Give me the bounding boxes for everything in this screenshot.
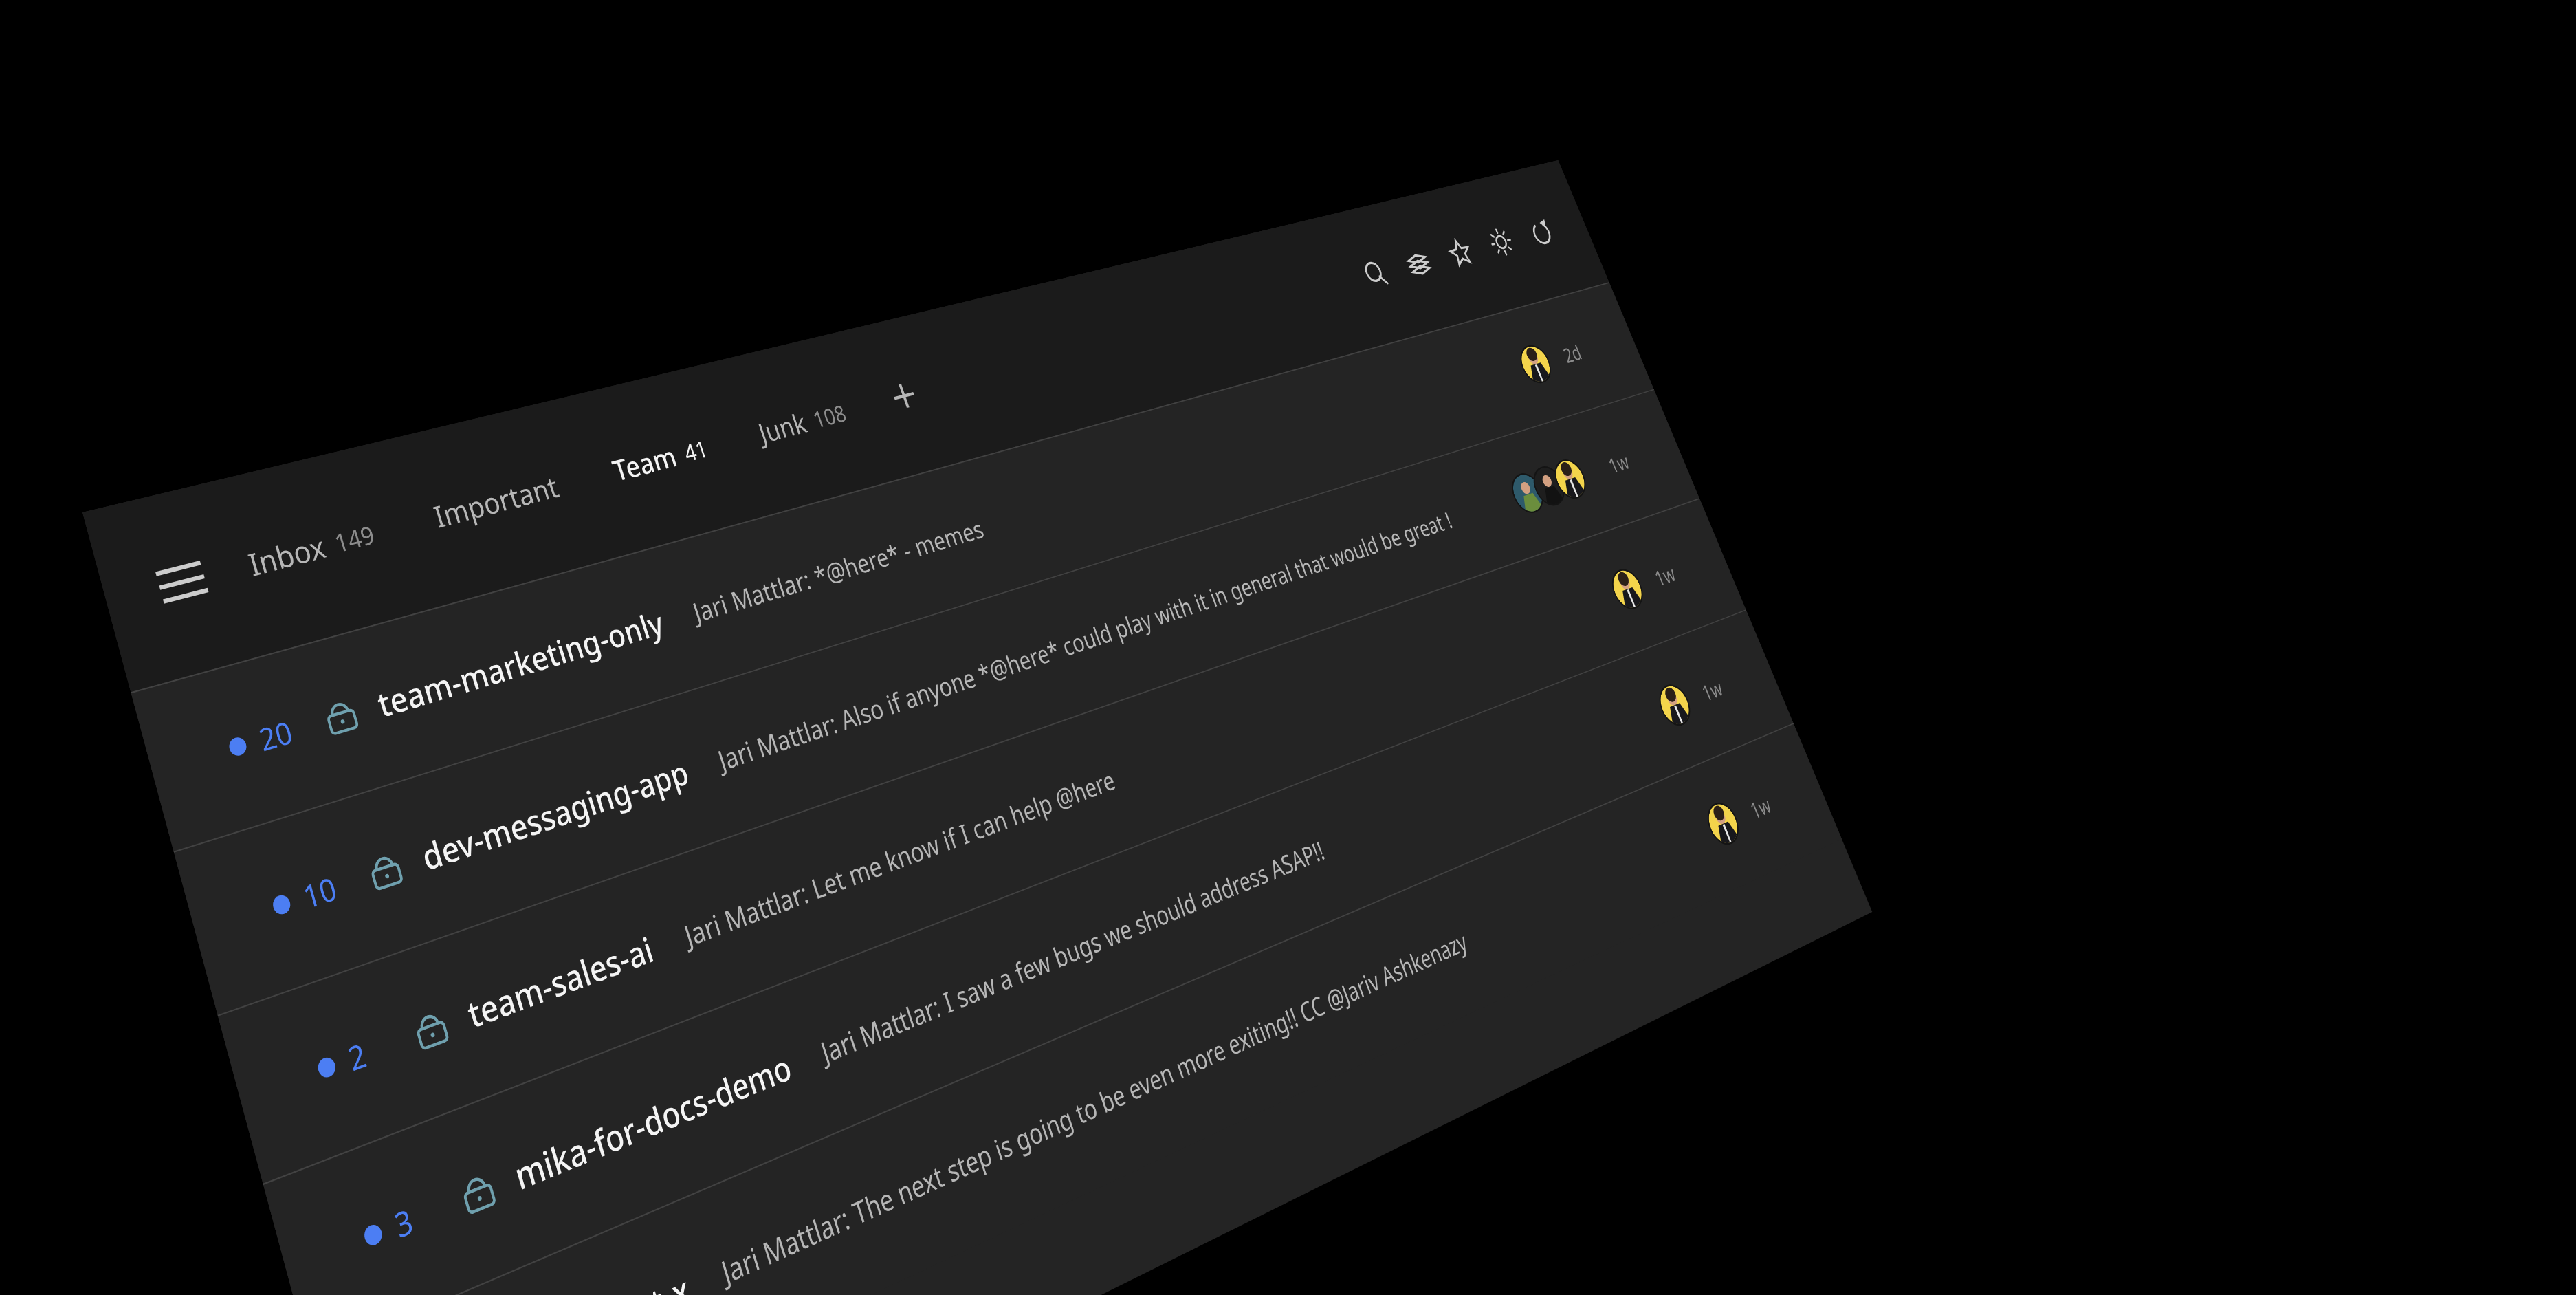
staticText: Jari Mattlar: Also if anyone *@here* cou… <box>713 488 1506 778</box>
button[interactable]: Refresh <box>1510 199 1572 265</box>
staticText: Jari Mattlar: I saw a few bugs we should… <box>816 702 1654 1071</box>
button[interactable]: Inbox <box>234 500 389 599</box>
staticText: 108 <box>809 397 850 435</box>
button[interactable]: Important <box>420 454 572 550</box>
button[interactable]: 20 <box>131 282 1654 851</box>
button[interactable]: Junk <box>745 383 859 463</box>
button[interactable]: Search <box>1343 240 1409 309</box>
button[interactable]: Favorites <box>1428 219 1492 287</box>
staticText: 3 <box>389 1197 418 1248</box>
staticText: 1w <box>1746 789 1775 825</box>
staticText: mika-for-docs-demo <box>509 1043 797 1201</box>
staticText: Junk <box>753 404 811 452</box>
staticText: Inbox <box>244 526 330 586</box>
staticText: 41 <box>680 432 712 468</box>
staticText: Jari Mattlar: *@here* - memes <box>688 359 1514 630</box>
staticText: 10 <box>298 866 342 918</box>
staticText: 1w <box>1604 447 1633 479</box>
button[interactable]: New conversation <box>875 366 933 426</box>
staticText: 2d <box>1559 338 1585 368</box>
staticText: 149 <box>330 517 379 560</box>
button[interactable]: Theme <box>1469 209 1533 276</box>
button[interactable]: 6 <box>310 723 1842 1295</box>
staticText: team-sales-ai <box>462 925 659 1039</box>
staticText: Important <box>429 467 563 537</box>
button[interactable]: Team <box>599 417 721 502</box>
staticText: 2 <box>343 1032 371 1081</box>
button[interactable]: Archive <box>1386 229 1451 298</box>
staticText: dev-messaging-app <box>416 749 694 881</box>
staticText: team-marketing-only <box>372 601 669 727</box>
button[interactable]: Menu <box>130 530 234 635</box>
staticText: 1w <box>1650 559 1679 592</box>
button[interactable]: 3 <box>263 609 1793 1295</box>
staticText: Jari Mattlar: Let me know if I can help … <box>679 585 1607 955</box>
staticText: Jari Mattlar: The next step is going to … <box>716 821 1703 1293</box>
staticText: 1w <box>1697 673 1727 707</box>
staticText: project-x <box>557 1264 696 1295</box>
button[interactable]: 2 <box>218 498 1746 1183</box>
staticText: Team <box>608 437 681 490</box>
button[interactable]: 10 <box>174 389 1699 1015</box>
staticText: 20 <box>254 711 297 760</box>
